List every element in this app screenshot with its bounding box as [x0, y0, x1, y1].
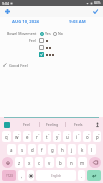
staticText: f: [41, 147, 43, 153]
button[interactable]: z: [15, 157, 23, 168]
button[interactable]: h: [58, 144, 66, 155]
staticText: s: [21, 147, 24, 153]
staticText: .: [81, 173, 83, 179]
button[interactable]: m: [78, 157, 87, 168]
button[interactable]: b: [56, 157, 65, 168]
button[interactable]: p: [93, 131, 101, 142]
staticText: d: [31, 147, 34, 153]
staticText: b: [59, 160, 62, 166]
button[interactable]: [39, 45, 52, 50]
staticText: 7: [68, 132, 70, 135]
button[interactable]: Delete: [89, 157, 101, 168]
button[interactable]: v: [45, 157, 54, 168]
staticText: 9:04: [2, 1, 9, 6]
button[interactable]: Feels: [66, 119, 91, 130]
staticText: q: [5, 134, 8, 140]
staticText: 0: [98, 132, 100, 135]
staticText: No: [58, 31, 63, 36]
button[interactable]: [39, 38, 49, 43]
staticText: m: [80, 160, 85, 166]
button[interactable]: Emoji: [27, 170, 34, 181]
staticText: r: [36, 134, 38, 140]
button[interactable]: d: [28, 144, 36, 155]
button[interactable]: i: [73, 131, 81, 142]
button[interactable]: 9:03 AM: [51, 17, 103, 27]
staticText: 6: [58, 132, 60, 135]
button[interactable]: Enter: [87, 170, 101, 181]
staticText: 9:03 AM: [69, 19, 86, 25]
staticText: 3: [28, 132, 30, 135]
staticText: Feeling: [46, 122, 59, 127]
staticText: k: [81, 147, 84, 153]
button[interactable]: Good Feel: [3, 61, 103, 69]
staticText: t: [46, 134, 48, 140]
staticText: ,: [21, 173, 23, 179]
button[interactable]: r: [33, 131, 41, 142]
button[interactable]: w: [13, 131, 21, 142]
staticText: n: [70, 160, 73, 166]
button[interactable]: ?123: [2, 170, 16, 181]
staticText: Yes: [45, 31, 51, 36]
button[interactable]: n: [67, 157, 76, 168]
button[interactable]: Feeling: [40, 119, 65, 130]
staticText: v: [48, 160, 51, 166]
staticText: 4: [38, 132, 40, 135]
button[interactable]: Add entry: [3, 7, 12, 16]
button[interactable]: y: [53, 131, 61, 142]
button[interactable]: English: [36, 170, 76, 181]
staticText: 9: [88, 132, 90, 135]
staticText: 2: [18, 132, 20, 135]
button[interactable]: c: [35, 157, 43, 168]
button[interactable]: .: [78, 170, 85, 181]
staticText: 8: [78, 132, 80, 135]
button[interactable]: Keyboard settings: [0, 119, 13, 130]
button[interactable]: Save: [91, 7, 100, 16]
staticText: j: [71, 147, 73, 153]
staticText: 1: [8, 132, 10, 135]
button[interactable]: l: [88, 144, 96, 155]
button[interactable]: Feel: [13, 119, 39, 130]
button[interactable]: x: [25, 157, 33, 168]
staticText: e: [26, 134, 29, 140]
staticText: h: [61, 147, 64, 153]
button[interactable]: No: [53, 31, 63, 36]
button[interactable]: e: [23, 131, 31, 142]
staticText: p: [96, 134, 99, 140]
staticText: w: [15, 134, 19, 140]
button[interactable]: t: [43, 131, 51, 142]
button[interactable]: a: [7, 144, 16, 155]
button[interactable]: o: [83, 131, 91, 142]
staticText: c: [38, 160, 41, 166]
button[interactable]: Yes: [40, 31, 51, 36]
staticText: x: [28, 160, 31, 166]
button[interactable]: [39, 52, 55, 57]
button[interactable]: Voice input: [91, 119, 103, 130]
button[interactable]: k: [78, 144, 86, 155]
button[interactable]: Shift: [2, 157, 13, 168]
staticText: g: [51, 147, 54, 153]
staticText: 84%: [94, 1, 101, 5]
button[interactable]: u: [63, 131, 71, 142]
staticText: l: [91, 147, 93, 153]
button[interactable]: s: [18, 144, 26, 155]
staticText: AUG 10, 2024: [12, 19, 39, 25]
staticText: Bowel Movement: [7, 31, 37, 36]
staticText: i: [76, 134, 78, 140]
staticText: o: [86, 134, 89, 140]
staticText: ?123: [6, 174, 13, 178]
staticText: Feel: [29, 38, 36, 43]
button[interactable]: AUG 10, 2024: [0, 17, 51, 27]
button[interactable]: q: [2, 131, 11, 142]
staticText: 5: [48, 132, 50, 135]
staticText: z: [18, 160, 21, 166]
button[interactable]: j: [68, 144, 76, 155]
button[interactable]: g: [48, 144, 56, 155]
staticText: Good Feel: [9, 63, 28, 68]
staticText: English: [51, 174, 62, 178]
staticText: Feels: [74, 122, 83, 127]
button[interactable]: ,: [18, 170, 25, 181]
staticText: Feel: [23, 122, 30, 127]
staticText: a: [10, 147, 13, 153]
button[interactable]: f: [38, 144, 46, 155]
staticText: y: [56, 134, 59, 140]
